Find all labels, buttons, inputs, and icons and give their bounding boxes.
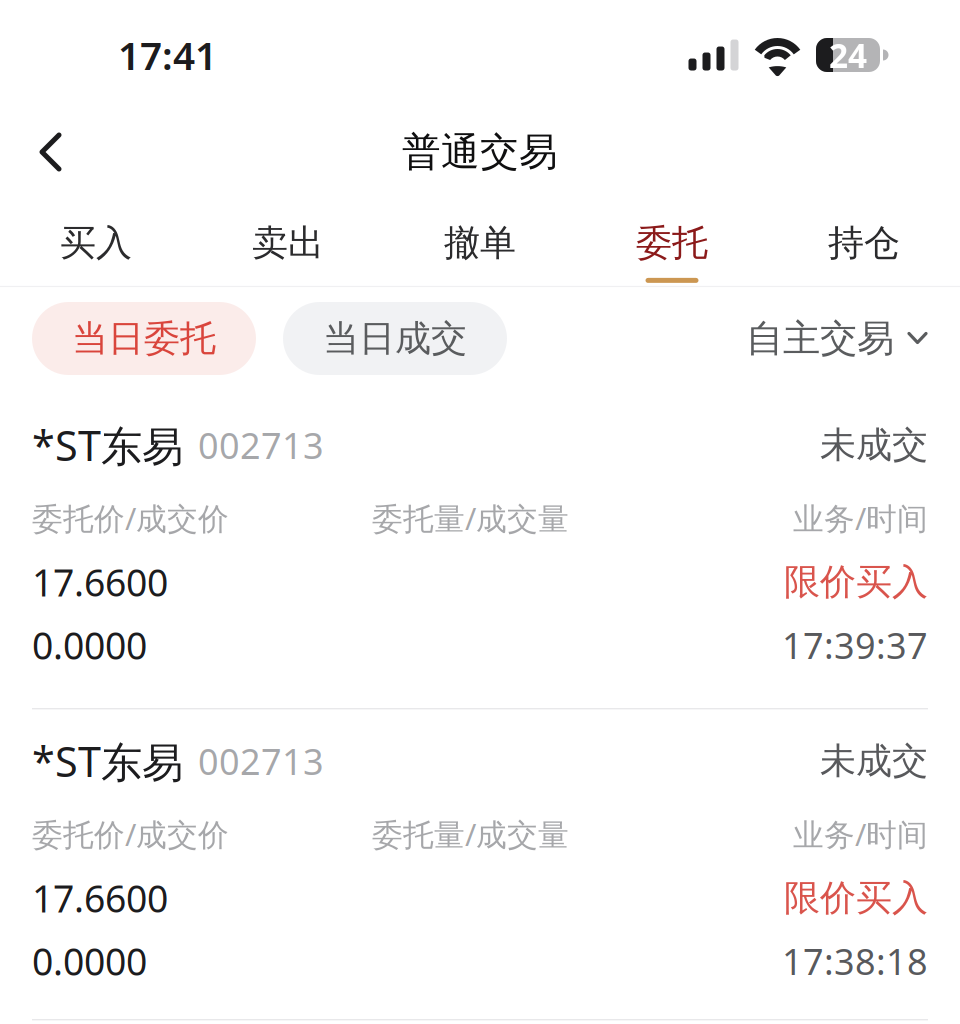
staticText: 17:39:37	[782, 621, 928, 669]
staticText: *ST东易	[32, 417, 183, 472]
staticText: 委托价/成交价	[32, 498, 229, 538]
staticText: 买入	[60, 221, 132, 265]
staticText: 002713	[198, 421, 324, 469]
staticText: 业务/时间	[793, 814, 928, 854]
staticText: 0.0000	[32, 620, 147, 670]
staticText: 002713	[198, 737, 324, 785]
button[interactable]: 委托	[576, 194, 768, 286]
button[interactable]: 当日成交	[283, 302, 507, 375]
staticText: 普通交易	[402, 128, 558, 176]
staticText: 限价买入	[784, 876, 928, 920]
staticText: 17.6600	[32, 557, 168, 607]
staticText: 限价买入	[784, 560, 928, 604]
staticText: 未成交	[820, 423, 928, 467]
staticText: 未成交	[820, 739, 928, 783]
staticText: 24	[829, 33, 867, 77]
staticText: 0.0000	[32, 936, 147, 986]
button[interactable]: *ST东易	[0, 740, 960, 1024]
staticText: 自主交易	[746, 316, 894, 361]
staticText: 17.6600	[32, 873, 168, 923]
button[interactable]: *ST东易	[0, 424, 960, 740]
staticText: 持仓	[828, 221, 900, 265]
button[interactable]: 当日委托	[32, 302, 256, 375]
staticText: 当日成交	[323, 316, 467, 361]
staticText: 17:41	[118, 29, 217, 81]
button[interactable]: 撤单	[384, 194, 576, 286]
staticText: 卖出	[252, 221, 324, 265]
button[interactable]: 持仓	[768, 194, 960, 286]
staticText: *ST东易	[32, 733, 183, 788]
button[interactable]: Back	[0, 110, 101, 194]
button[interactable]: 自主交易	[746, 302, 928, 375]
staticText: 撤单	[444, 221, 516, 265]
button[interactable]: 卖出	[192, 194, 384, 286]
staticText: 当日委托	[72, 316, 216, 361]
staticText: 委托价/成交价	[32, 814, 229, 854]
staticText: 委托量/成交量	[372, 498, 569, 538]
staticText: 委托	[636, 221, 708, 265]
staticText: 17:38:18	[782, 937, 928, 985]
button[interactable]: 买入	[0, 194, 192, 286]
staticText: 业务/时间	[793, 498, 928, 538]
staticText: 委托量/成交量	[372, 814, 569, 854]
